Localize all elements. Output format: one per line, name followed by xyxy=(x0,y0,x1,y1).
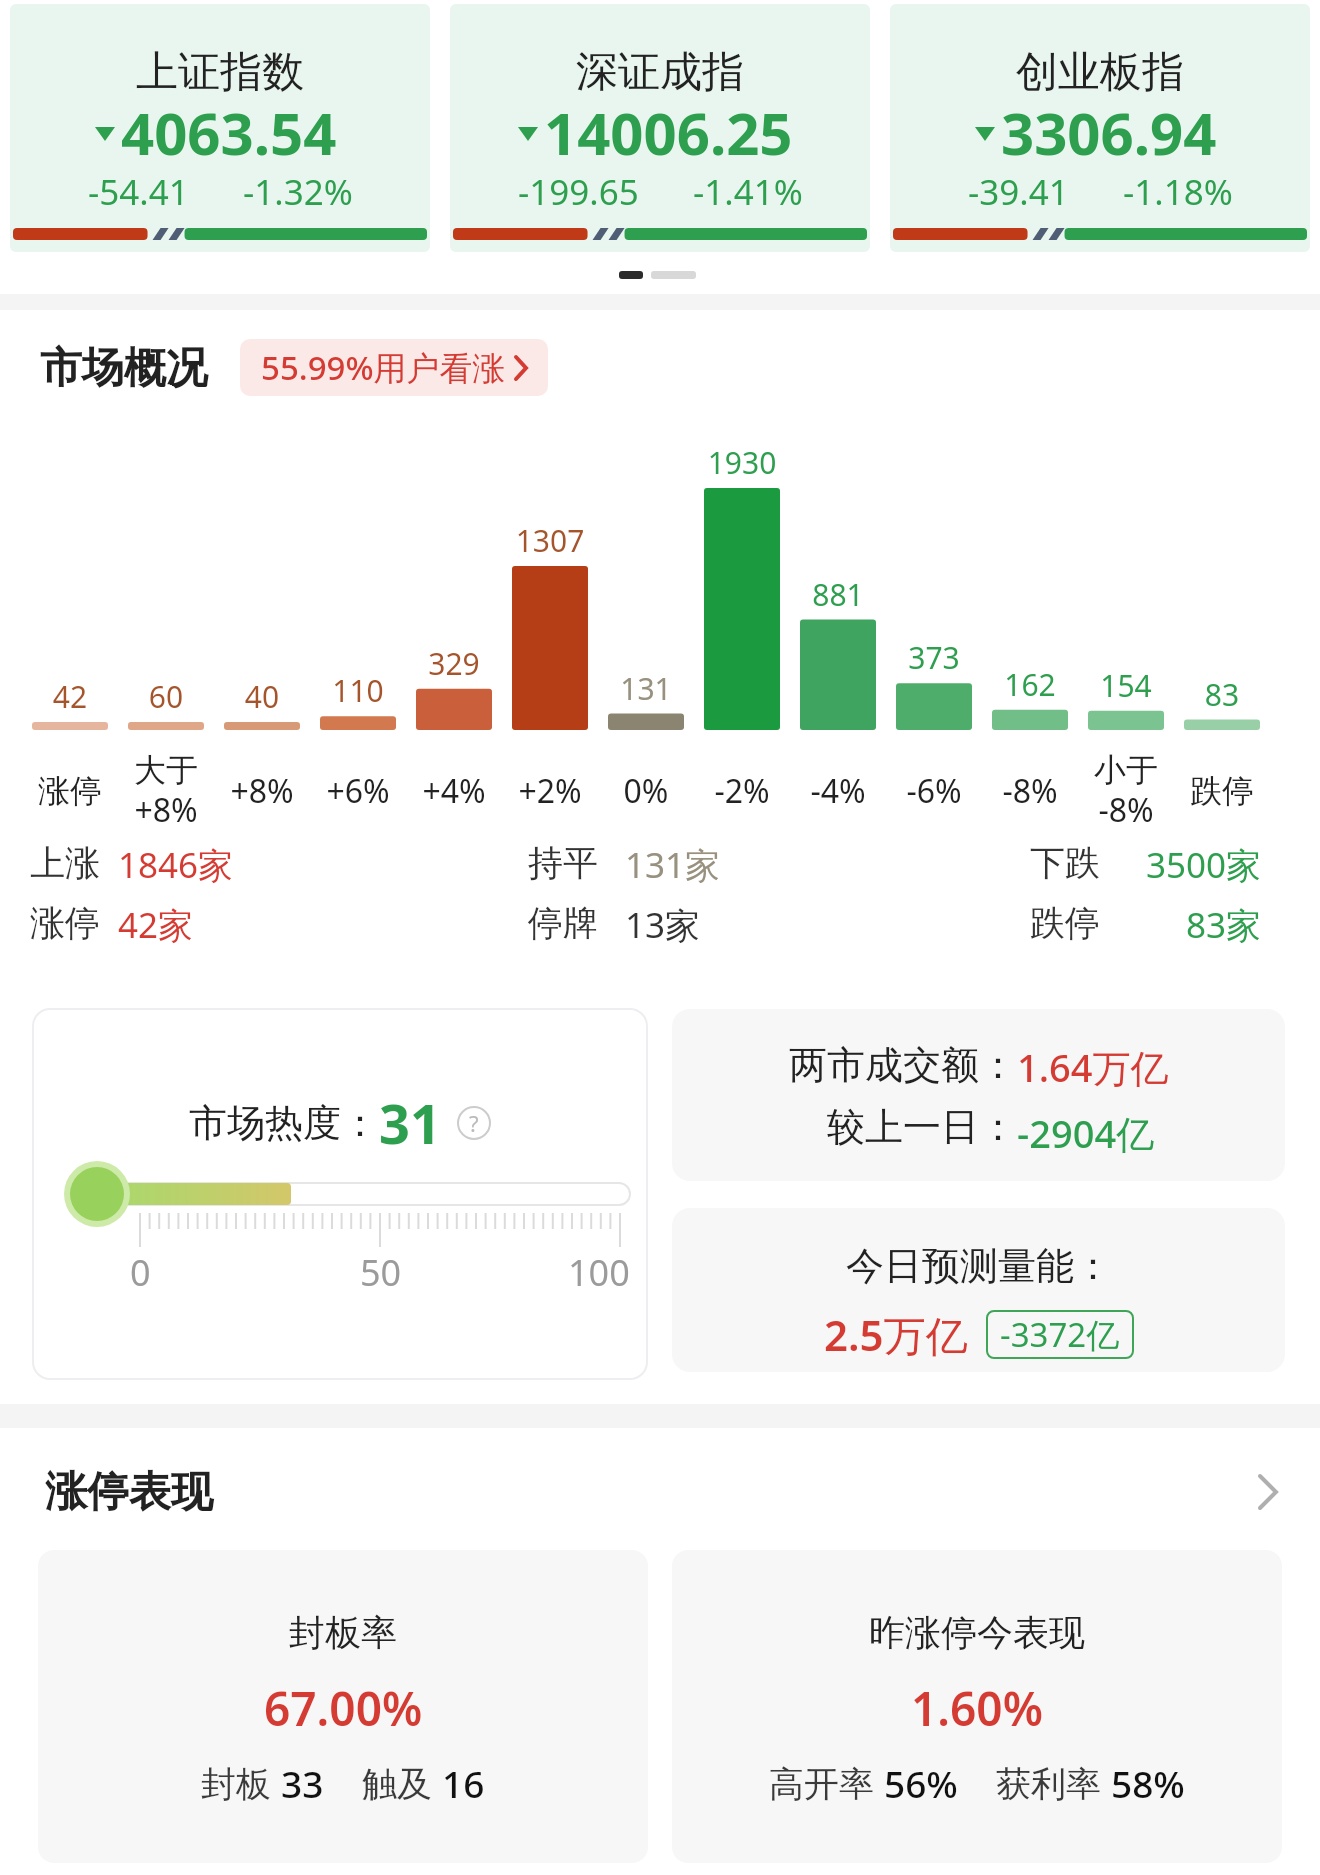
staticText: 14006.25 xyxy=(544,93,793,172)
staticText: 小于 -8% xyxy=(1078,750,1174,832)
staticText: 上涨 xyxy=(30,841,100,885)
staticText: 市场概况 xyxy=(40,342,208,395)
staticText: 40 xyxy=(214,676,310,717)
staticText: 58% xyxy=(1111,1758,1185,1808)
staticText: 昨涨停今表现 xyxy=(869,1610,1085,1655)
staticText: ? xyxy=(469,1108,479,1138)
staticText: 31 xyxy=(379,1086,441,1160)
staticText: 110 xyxy=(310,670,406,711)
staticText: 封板率 xyxy=(289,1610,397,1655)
staticText: -1.18% xyxy=(1123,168,1233,216)
staticText: 1.64万亿 xyxy=(1017,1041,1169,1093)
button[interactable]: 今日预测量能： xyxy=(672,1208,1285,1372)
staticText: 涨停 xyxy=(22,771,118,811)
staticText: 16 xyxy=(442,1758,485,1808)
staticText: 50 xyxy=(360,1248,402,1297)
button[interactable]: 封板率 xyxy=(38,1550,648,1863)
staticText: 3500家 xyxy=(1146,841,1262,889)
staticText: +4% xyxy=(406,769,502,813)
staticText: 83 xyxy=(1174,674,1270,715)
staticText: 3306.94 xyxy=(1001,93,1217,172)
staticText: +6% xyxy=(310,769,406,813)
staticText: 封板 xyxy=(201,1759,281,1807)
staticText: -1.32% xyxy=(243,168,353,216)
staticText: -2% xyxy=(694,769,790,813)
staticText: -54.41 xyxy=(88,168,189,216)
staticText: 42家 xyxy=(118,901,194,949)
staticText: 创业板指 xyxy=(1016,46,1184,99)
staticText: 154 xyxy=(1078,665,1174,706)
staticText: 下跌 xyxy=(1030,841,1100,885)
button[interactable]: 涨停表现 xyxy=(0,1462,1320,1522)
staticText: 55.99%用户看涨 xyxy=(261,345,506,390)
button[interactable]: 昨涨停今表现 xyxy=(672,1550,1282,1863)
staticText: 1930 xyxy=(694,442,790,483)
staticText: -4% xyxy=(790,769,886,813)
staticText: 0% xyxy=(598,769,694,813)
staticText: -1.41% xyxy=(693,168,803,216)
button[interactable]: 上证指数 xyxy=(10,4,430,252)
staticText: 1307 xyxy=(502,520,598,561)
staticText: -6% xyxy=(886,769,982,813)
staticText: 881 xyxy=(790,574,886,615)
button[interactable]: 市场热度： xyxy=(32,1008,648,1380)
staticText: 373 xyxy=(886,637,982,678)
staticText: -3372亿 xyxy=(1000,1312,1120,1357)
staticText: 162 xyxy=(982,664,1078,705)
staticText: -2904亿 xyxy=(1017,1107,1155,1159)
staticText: 33 xyxy=(281,1758,324,1808)
staticText: 停牌 xyxy=(528,901,598,945)
staticText: 56% xyxy=(884,1758,958,1808)
staticText: 1.60% xyxy=(911,1677,1043,1740)
staticText: 获利率 xyxy=(996,1759,1111,1807)
staticText: 131家 xyxy=(625,841,721,889)
staticText: 131 xyxy=(598,668,694,709)
staticText: 涨停 xyxy=(30,901,100,945)
staticText: 跌停 xyxy=(1174,771,1270,811)
staticText: 跌停 xyxy=(1030,901,1100,945)
button[interactable]: 两市成交额： xyxy=(672,1009,1285,1181)
staticText: 上证指数 xyxy=(136,46,304,99)
staticText: 两市成交额： xyxy=(789,1041,1017,1089)
staticText: -199.65 xyxy=(518,168,639,216)
staticText: 深证成指 xyxy=(576,46,744,99)
staticText: -8% xyxy=(982,769,1078,813)
staticText: 13家 xyxy=(625,901,701,949)
staticText: 2.5万亿 xyxy=(824,1306,968,1363)
staticText: 83家 xyxy=(1186,901,1262,949)
staticText: 持平 xyxy=(528,841,598,885)
staticText: -39.41 xyxy=(968,168,1069,216)
staticText: 今日预测量能： xyxy=(846,1242,1112,1290)
staticText: +2% xyxy=(502,769,598,813)
staticText: 100 xyxy=(568,1248,630,1297)
staticText: 市场热度： xyxy=(189,1099,379,1147)
staticText: 涨停表现 xyxy=(45,1466,213,1519)
staticText: 高开率 xyxy=(769,1759,884,1807)
staticText: 1846家 xyxy=(118,841,234,889)
staticText: 42 xyxy=(22,676,118,717)
staticText: 触及 xyxy=(362,1759,442,1807)
button[interactable]: 55.99%用户看涨 xyxy=(240,339,548,396)
staticText: 4063.54 xyxy=(121,93,337,172)
staticText: 较上一日： xyxy=(827,1103,1017,1151)
staticText: 60 xyxy=(118,676,214,717)
staticText: +8% xyxy=(214,769,310,813)
button[interactable]: 深证成指 xyxy=(450,4,870,252)
staticText: 67.00% xyxy=(264,1677,423,1740)
button[interactable]: 创业板指 xyxy=(890,4,1310,252)
staticText: 329 xyxy=(406,643,502,684)
staticText: 大于 +8% xyxy=(118,750,214,832)
staticText: 0 xyxy=(130,1248,151,1297)
